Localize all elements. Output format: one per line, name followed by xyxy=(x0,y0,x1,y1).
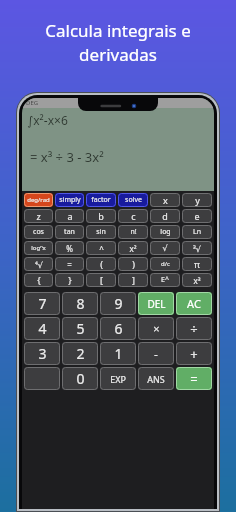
button[interactable]: e xyxy=(182,209,212,223)
button[interactable]: ÷ xyxy=(176,317,212,340)
staticText: d/c xyxy=(161,260,170,268)
button[interactable]: d/c xyxy=(150,257,180,271)
button[interactable]: × xyxy=(138,317,174,340)
button[interactable]: c xyxy=(118,209,148,223)
staticText: ⁴√ xyxy=(35,259,43,270)
staticText: x³ xyxy=(193,275,201,286)
button[interactable]: } xyxy=(55,273,84,287)
button[interactable]: E^ xyxy=(150,273,180,287)
staticText: ) xyxy=(132,258,135,270)
staticText: ∫x²-x×6 xyxy=(27,112,68,128)
staticText: x² xyxy=(129,243,137,254)
button[interactable]: [ xyxy=(86,273,116,287)
button[interactable]: - xyxy=(138,342,174,365)
button[interactable]: 4 xyxy=(24,317,60,340)
button[interactable]: b xyxy=(86,209,116,223)
staticText: ^ xyxy=(99,243,104,254)
button[interactable] xyxy=(24,367,60,390)
staticText: 3 xyxy=(38,344,47,363)
button[interactable]: 2 xyxy=(62,342,98,365)
staticText: 8 xyxy=(76,294,85,313)
button[interactable]: a xyxy=(55,209,84,223)
button[interactable]: sin xyxy=(86,225,116,239)
staticText: sin xyxy=(96,227,106,237)
button[interactable]: factor xyxy=(86,193,116,207)
button[interactable]: AC xyxy=(176,292,212,315)
button[interactable]: x xyxy=(150,193,180,207)
button[interactable]: ³√ xyxy=(182,241,212,255)
staticText: + xyxy=(190,345,198,363)
staticText: 2 xyxy=(76,344,85,363)
button[interactable]: log xyxy=(150,225,180,239)
button[interactable]: 0 xyxy=(62,367,98,390)
button[interactable]: logⁿx xyxy=(24,241,53,255)
staticText: c xyxy=(131,210,136,222)
staticText: ³√ xyxy=(193,243,201,254)
button[interactable]: ] xyxy=(118,273,148,287)
staticText: √ xyxy=(162,244,168,253)
button[interactable]: ANS xyxy=(138,367,174,390)
button[interactable]: simply xyxy=(55,193,84,207)
other: Notch xyxy=(78,98,158,111)
button[interactable]: 1 xyxy=(100,342,136,365)
button[interactable]: % xyxy=(55,241,84,255)
button[interactable]: solve xyxy=(118,193,148,207)
button[interactable]: { xyxy=(24,273,53,287)
button[interactable]: π xyxy=(182,257,212,271)
button[interactable]: d xyxy=(150,209,180,223)
button[interactable]: deg/rad xyxy=(24,193,53,207)
button[interactable]: cos xyxy=(24,225,53,239)
button[interactable]: 5 xyxy=(62,317,98,340)
staticText: AC xyxy=(187,296,201,311)
staticText: log xyxy=(160,227,171,237)
staticText: 0 xyxy=(76,369,85,388)
staticText: [ xyxy=(100,274,103,286)
staticText: x xyxy=(163,194,168,206)
staticText: DEL xyxy=(147,297,166,311)
staticText: d xyxy=(162,210,168,222)
staticText: × xyxy=(153,321,160,336)
button[interactable]: DEL xyxy=(138,292,174,315)
staticText: E^ xyxy=(161,275,169,285)
button[interactable]: 3 xyxy=(24,342,60,365)
staticText: deg/rad xyxy=(27,196,50,204)
button[interactable]: y xyxy=(182,193,212,207)
staticText: EXP xyxy=(110,373,126,385)
staticText: factor xyxy=(91,195,111,205)
button[interactable]: 9 xyxy=(100,292,136,315)
staticText: Ln xyxy=(193,227,201,237)
staticText: % xyxy=(66,243,73,254)
staticText: simply xyxy=(59,195,81,205)
button[interactable]: 7 xyxy=(24,292,60,315)
staticText: = xyxy=(67,259,72,270)
button[interactable]: x³ xyxy=(182,273,212,287)
button[interactable]: + xyxy=(176,342,212,365)
staticText: DEG xyxy=(26,99,39,107)
button[interactable]: Ln xyxy=(182,225,212,239)
staticText: y xyxy=(195,194,200,206)
button[interactable]: = xyxy=(176,367,212,390)
button[interactable]: tan xyxy=(55,225,84,239)
staticText: tan xyxy=(64,227,75,237)
staticText: π xyxy=(194,258,200,270)
staticText: = xyxy=(190,370,198,388)
staticText: e xyxy=(194,210,200,222)
staticText: { xyxy=(37,274,41,286)
button[interactable]: 6 xyxy=(100,317,136,340)
staticText: solve xyxy=(125,195,142,205)
button[interactable]: 8 xyxy=(62,292,98,315)
button[interactable]: EXP xyxy=(100,367,136,390)
staticText: ANS xyxy=(147,373,165,385)
button[interactable]: ( xyxy=(86,257,116,271)
button[interactable]: ⁴√ xyxy=(24,257,53,271)
staticText: = x³ ÷ 3 - 3x² xyxy=(30,148,104,166)
button[interactable]: n! xyxy=(118,225,148,239)
button[interactable]: ) xyxy=(118,257,148,271)
button[interactable]: x² xyxy=(118,241,148,255)
button[interactable]: √ xyxy=(150,241,180,255)
staticText: z xyxy=(36,210,41,222)
staticText: a xyxy=(67,210,73,222)
button[interactable]: ^ xyxy=(86,241,116,255)
button[interactable]: = xyxy=(55,257,84,271)
button[interactable]: z xyxy=(24,209,53,223)
